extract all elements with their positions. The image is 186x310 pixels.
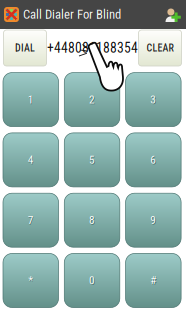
staticText: CLEAR [146, 42, 173, 54]
button[interactable]: 8 [64, 193, 120, 247]
staticText: 2 [89, 93, 95, 106]
button[interactable]: * [3, 253, 58, 307]
button[interactable]: CLEAR [138, 30, 181, 66]
staticText: 6 [150, 153, 156, 167]
staticText: 0 [90, 275, 96, 288]
staticText: Call Dialer For Blind [23, 7, 121, 22]
button[interactable]: 1 [3, 73, 58, 127]
staticText: 1 [28, 94, 34, 107]
staticText: 5 [89, 153, 95, 167]
staticText: 4 [28, 154, 34, 167]
staticText: 8 [90, 214, 96, 228]
staticText: 9 [150, 214, 156, 227]
staticText: 6 [151, 154, 157, 167]
button[interactable]: 3 [126, 73, 181, 127]
staticText: * [29, 275, 34, 288]
staticText: 0 [89, 274, 95, 287]
button[interactable]: 2 [64, 73, 120, 127]
staticText: 5 [90, 154, 96, 167]
staticText: 1 [28, 93, 34, 106]
button[interactable]: Add contact [165, 6, 181, 23]
staticText: +448081188354 [47, 40, 138, 56]
staticText: # [151, 275, 157, 288]
staticText: DIAL [15, 42, 35, 54]
button[interactable]: 9 [126, 193, 181, 247]
button[interactable]: 4 [3, 133, 58, 187]
staticText: * [28, 274, 33, 287]
button[interactable]: 5 [64, 133, 120, 187]
staticText: # [150, 274, 156, 287]
staticText: 3 [150, 93, 156, 106]
button[interactable]: 0 [64, 253, 120, 307]
staticText: 9 [151, 214, 157, 228]
staticText: 7 [28, 214, 34, 227]
staticText: 8 [89, 214, 95, 227]
staticText: 3 [151, 94, 157, 107]
staticText: 4 [28, 153, 34, 167]
button[interactable]: 7 [3, 193, 58, 247]
staticText: 2 [90, 94, 96, 107]
button[interactable]: DIAL [3, 30, 46, 66]
staticText: 7 [28, 214, 34, 228]
button[interactable]: # [126, 253, 181, 307]
button[interactable]: 6 [126, 133, 181, 187]
